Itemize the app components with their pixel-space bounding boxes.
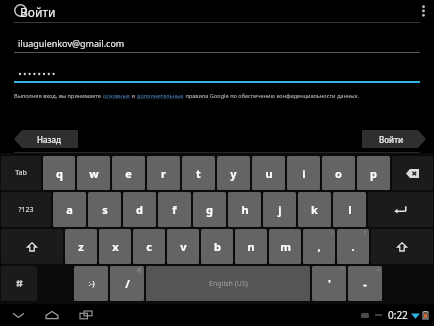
button[interactable]: o <box>322 156 355 190</box>
staticText: ' <box>328 276 331 291</box>
button[interactable]: Войти <box>362 130 426 148</box>
staticText: e <box>125 166 132 181</box>
staticText: Tab <box>15 168 27 178</box>
staticText: и <box>130 92 137 100</box>
staticText: Войти <box>379 134 404 145</box>
staticText: @ <box>137 267 142 274</box>
staticText: o <box>335 166 342 181</box>
staticText: ! <box>331 230 333 237</box>
staticText: w <box>89 166 99 181</box>
button[interactable]: :-) <box>74 266 108 301</box>
staticText: " <box>341 267 344 274</box>
staticText: iluagulenkov@gmail.com <box>18 37 125 49</box>
staticText: English (US) <box>209 279 248 289</box>
button[interactable]: w <box>77 156 110 190</box>
staticText: / <box>125 276 130 291</box>
button[interactable]: f <box>158 192 191 227</box>
button[interactable]: t <box>182 156 215 190</box>
staticText: Назад <box>37 134 61 145</box>
staticText: z <box>78 239 84 254</box>
button[interactable]: основные <box>103 92 130 100</box>
button[interactable]: Backspace <box>392 156 433 190</box>
staticText: f <box>172 202 177 217</box>
staticText: основные <box>103 92 130 100</box>
staticText: :-) <box>88 279 95 289</box>
button[interactable]: s <box>88 192 121 227</box>
button[interactable]: / <box>110 266 144 301</box>
staticText: . <box>351 239 355 254</box>
staticText: ? <box>364 230 367 237</box>
button[interactable]: Space <box>146 266 310 301</box>
staticText: t <box>196 166 201 181</box>
button[interactable]: Shift <box>1 229 63 264</box>
button[interactable]: p <box>357 156 390 190</box>
staticText: l <box>348 202 352 217</box>
staticText: = <box>377 267 380 274</box>
button[interactable]: g <box>193 192 226 227</box>
staticText: y <box>230 166 237 181</box>
staticText: 0:22 <box>388 308 408 322</box>
button[interactable]: . <box>337 229 369 264</box>
staticText: x <box>112 239 119 254</box>
staticText: v <box>180 239 187 254</box>
staticText: s <box>102 202 108 217</box>
button[interactable]: - <box>348 266 382 301</box>
staticText: дополнительные <box>137 92 184 100</box>
button[interactable]: дополнительные <box>137 92 184 100</box>
button[interactable]: m <box>269 229 301 264</box>
button[interactable]: , <box>303 229 335 264</box>
button[interactable]: Tab <box>1 156 41 190</box>
button[interactable]: Назад <box>14 130 78 148</box>
button[interactable]: h <box>228 192 261 227</box>
staticText: r <box>161 166 166 181</box>
staticText: ?123 <box>18 205 34 215</box>
staticText: _ <box>103 267 106 274</box>
staticText: g <box>206 202 213 217</box>
button[interactable]: y <box>217 156 250 190</box>
staticText: q <box>56 166 63 181</box>
button[interactable]: e <box>112 156 145 190</box>
staticText: p <box>370 166 377 181</box>
staticText: b <box>214 239 221 254</box>
staticText: k <box>311 202 318 217</box>
staticText: a <box>66 202 73 217</box>
button[interactable]: iluagulenkov@gmail.com <box>14 34 420 52</box>
staticText: h <box>241 202 249 217</box>
button[interactable]: Keyboard settings <box>1 266 37 301</box>
button[interactable]: Password <box>14 65 420 81</box>
staticText: правила Google по обеспечению конфиденци… <box>184 92 359 100</box>
staticText: d <box>136 202 143 217</box>
staticText: Войти <box>20 4 56 20</box>
button[interactable]: j <box>263 192 296 227</box>
button[interactable]: l <box>333 192 366 227</box>
staticText: j <box>278 202 282 217</box>
button[interactable]: Enter <box>368 192 433 227</box>
button[interactable]: n <box>235 229 267 264</box>
staticText: n <box>247 239 255 254</box>
staticText: i <box>302 166 306 181</box>
button[interactable]: c <box>133 229 165 264</box>
button[interactable]: r <box>147 156 180 190</box>
button[interactable]: z <box>65 229 97 264</box>
button[interactable]: d <box>123 192 156 227</box>
button[interactable]: x <box>99 229 131 264</box>
staticText: Выполняя вход, вы принимаете <box>14 92 103 100</box>
button[interactable]: q <box>43 156 75 190</box>
button[interactable]: Shift <box>371 229 433 264</box>
staticText: - <box>363 276 367 291</box>
button[interactable]: Symbols <box>1 192 51 227</box>
button[interactable]: Recent apps <box>74 305 98 325</box>
button[interactable]: Home <box>40 305 64 325</box>
button[interactable]: u <box>252 156 285 190</box>
button[interactable]: Hide keyboard <box>6 305 30 325</box>
button[interactable]: a <box>53 192 86 227</box>
button[interactable]: v <box>167 229 199 264</box>
staticText: u <box>265 166 273 181</box>
staticText: c <box>146 239 152 254</box>
button[interactable]: More options <box>412 0 434 22</box>
button[interactable]: i <box>287 156 320 190</box>
button[interactable]: b <box>201 229 233 264</box>
staticText: m <box>280 239 291 254</box>
button[interactable]: k <box>298 192 331 227</box>
button[interactable]: ' <box>312 266 346 301</box>
